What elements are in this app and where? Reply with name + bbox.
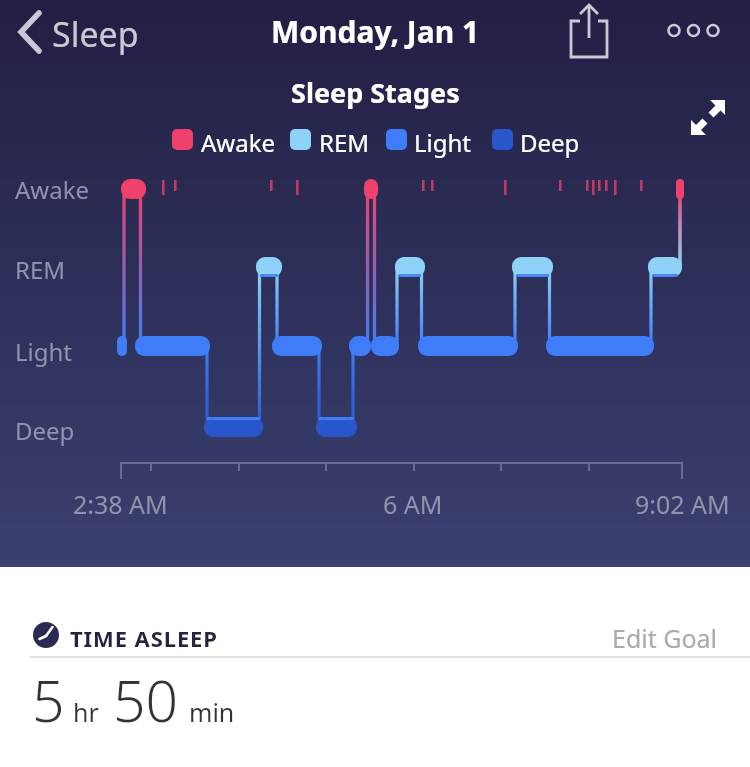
staticText: Light — [15, 335, 73, 368]
staticText: 9:02 AM — [635, 487, 730, 521]
staticText: 6 AM — [383, 487, 443, 521]
button[interactable] — [560, 0, 620, 64]
staticText: min — [189, 695, 235, 729]
staticText: Light — [414, 126, 472, 159]
button[interactable] — [660, 0, 726, 62]
staticText: Awake — [15, 173, 90, 206]
button[interactable] — [8, 8, 148, 58]
staticText: Sleep Stages — [291, 74, 460, 111]
staticText: REM — [15, 253, 66, 286]
staticText: Deep — [15, 414, 75, 447]
staticText: Awake — [201, 126, 276, 159]
staticText: TIME ASLEEP — [70, 623, 218, 653]
staticText: 50 — [113, 661, 179, 739]
staticText: Deep — [520, 126, 580, 159]
staticText: Monday, Jan 1 — [271, 11, 480, 52]
button[interactable] — [684, 94, 732, 142]
staticText: 5 — [32, 661, 65, 739]
staticText: Sleep — [52, 11, 139, 57]
staticText: 2:38 AM — [73, 487, 168, 521]
button[interactable]: Edit Goal — [612, 621, 718, 655]
staticText: REM — [319, 126, 370, 159]
staticText: hr — [73, 695, 99, 729]
